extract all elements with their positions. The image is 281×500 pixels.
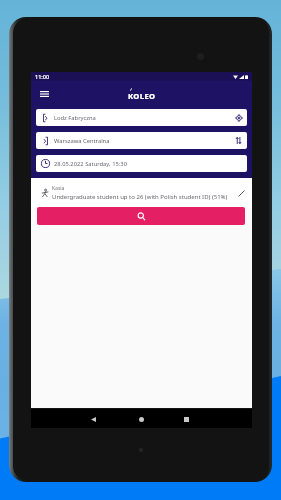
button[interactable]: Swap stations (233, 135, 244, 146)
button[interactable]: Back (88, 414, 98, 424)
button[interactable]: Open navigation menu (35, 85, 53, 103)
button[interactable]: 28.05.2022 Saturday, 15:30 (36, 155, 247, 172)
button[interactable]: Recent apps (181, 414, 191, 424)
button[interactable]: Use my location (233, 112, 244, 123)
staticText: Warszawa Centralna (54, 137, 110, 145)
staticText: Undergraduate student up to 26 (with Pol… (52, 193, 228, 201)
button[interactable]: Home (136, 414, 146, 424)
staticText: 28.05.2022 Saturday, 15:30 (54, 160, 127, 168)
button[interactable]: Warszawa Centralna (36, 132, 247, 149)
staticText: Kasia (52, 185, 65, 192)
staticText: Lodz Fabryczna (54, 114, 96, 122)
button[interactable]: Edit passenger (236, 188, 247, 199)
staticText: KOLEO (128, 91, 156, 101)
button[interactable]: Lodz Fabryczna (36, 109, 247, 126)
button[interactable]: Kasia (41, 185, 247, 201)
staticText: 11:00 (35, 73, 50, 80)
button[interactable]: Search connections (37, 207, 245, 225)
